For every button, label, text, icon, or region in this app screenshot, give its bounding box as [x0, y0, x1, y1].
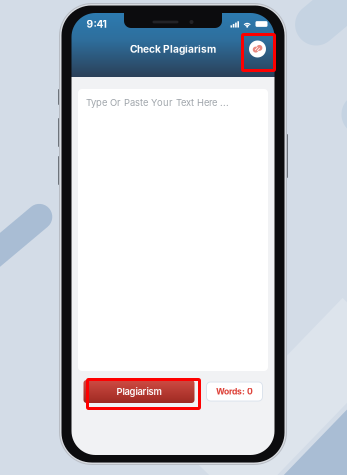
button[interactable]: Plagiarism [83, 380, 194, 403]
staticText: Plagiarism [116, 386, 161, 397]
staticText: Check Plagiarism [130, 43, 216, 55]
staticText: 9:41 [86, 18, 106, 30]
staticText: Type Or Paste Your Text Here ... [86, 97, 229, 108]
button[interactable]: Words: 0 [206, 382, 262, 401]
button[interactable]: Scan for plagiarism [241, 31, 273, 67]
staticText: Words: 0 [216, 386, 253, 397]
